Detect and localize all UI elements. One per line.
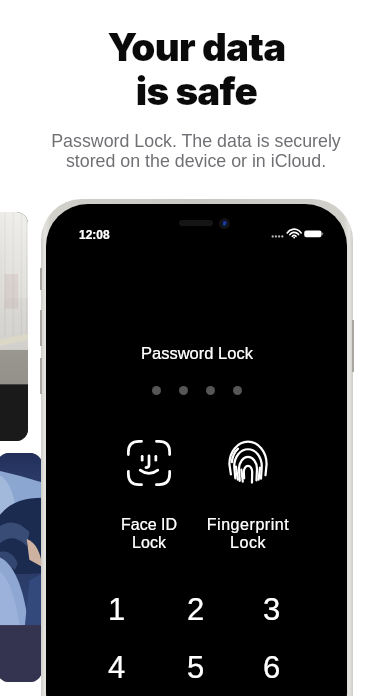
button[interactable]: 6 xyxy=(239,650,305,684)
staticText: 6 xyxy=(263,650,281,684)
staticText: Face ID Lock xyxy=(104,516,194,551)
staticText: 5 xyxy=(187,650,205,684)
staticText: Fingerprint Lock xyxy=(202,516,294,551)
button[interactable]: 2 xyxy=(163,592,229,626)
button[interactable]: Face ID Lock xyxy=(104,516,194,551)
staticText: Password Lock. The data is securely stor… xyxy=(51,131,341,171)
staticText: 2 xyxy=(187,592,205,626)
button[interactable]: Fingerprint Lock xyxy=(202,516,294,551)
button[interactable]: 3 xyxy=(239,592,305,626)
button[interactable]: Fingerprint Lock xyxy=(228,440,268,483)
staticText: 3 xyxy=(263,592,281,626)
staticText: Your data is safe xyxy=(107,24,286,115)
button[interactable]: 4 xyxy=(84,650,150,684)
staticText: 1 xyxy=(108,592,126,626)
staticText: 12:08 xyxy=(79,228,110,241)
button[interactable]: Face ID Lock xyxy=(127,440,171,486)
button[interactable]: 1 xyxy=(84,592,150,626)
button[interactable]: 5 xyxy=(163,650,229,684)
staticText: 4 xyxy=(108,650,126,684)
staticText: Password Lock xyxy=(141,344,253,362)
